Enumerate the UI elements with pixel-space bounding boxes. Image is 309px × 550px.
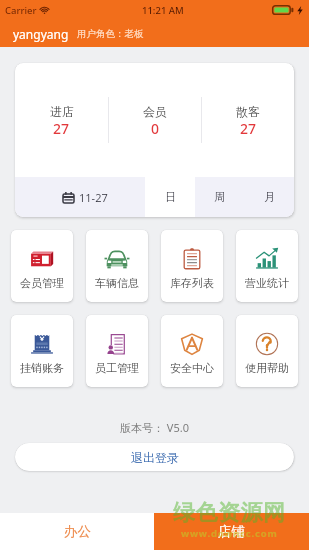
button[interactable]: 进店	[15, 103, 108, 138]
staticText: 散客	[236, 104, 260, 119]
button[interactable]: 使用帮助	[236, 315, 298, 387]
staticText: 店铺	[218, 523, 245, 540]
button[interactable]: 日	[145, 177, 195, 217]
staticText: 0	[151, 119, 160, 138]
staticText: 库存列表	[170, 276, 214, 290]
button[interactable]: 库存列表	[161, 230, 223, 302]
staticText: 周	[214, 190, 225, 204]
button[interactable]: 会员管理	[11, 230, 73, 302]
staticText: 用户角色：老板	[77, 28, 144, 40]
staticText: 进店	[50, 104, 74, 119]
staticText: yangyang	[13, 26, 69, 42]
button[interactable]: 挂销账务	[11, 315, 73, 387]
staticText: 11-27	[79, 190, 108, 205]
button[interactable]: 会员	[109, 103, 201, 138]
button[interactable]: 退出登录	[15, 443, 294, 471]
button[interactable]: 办公	[0, 513, 154, 550]
staticText: 绿色资源网	[173, 499, 286, 527]
staticText: 车辆信息	[95, 276, 139, 290]
staticText: 办公	[64, 523, 91, 540]
button[interactable]: 月	[244, 177, 294, 217]
button[interactable]: 散客	[202, 103, 294, 138]
staticText: 27	[240, 119, 257, 138]
staticText: 27	[53, 119, 70, 138]
staticText: www.downcc.com	[181, 527, 278, 540]
staticText: 会员	[143, 104, 167, 119]
staticText: 会员管理	[20, 276, 64, 290]
button[interactable]: 11-27	[15, 177, 145, 217]
staticText: 版本号： V5.0	[0, 420, 309, 435]
staticText: 月	[264, 190, 275, 204]
button[interactable]: 营业统计	[236, 230, 298, 302]
staticText: 退出登录	[131, 450, 179, 465]
button[interactable]: 员工管理	[86, 315, 148, 387]
staticText: 挂销账务	[20, 361, 64, 375]
staticText: 使用帮助	[245, 361, 289, 375]
staticText: 安全中心	[170, 361, 214, 375]
staticText: 11:21 AM	[142, 4, 184, 17]
button[interactable]: 安全中心	[161, 315, 223, 387]
button[interactable]: 周	[195, 177, 244, 217]
staticText: 营业统计	[245, 276, 289, 290]
staticText: 日	[165, 190, 176, 204]
staticText: 员工管理	[95, 361, 139, 375]
button[interactable]: 车辆信息	[86, 230, 148, 302]
staticText: Carrier	[5, 4, 37, 17]
button[interactable]: 店铺	[154, 513, 309, 550]
